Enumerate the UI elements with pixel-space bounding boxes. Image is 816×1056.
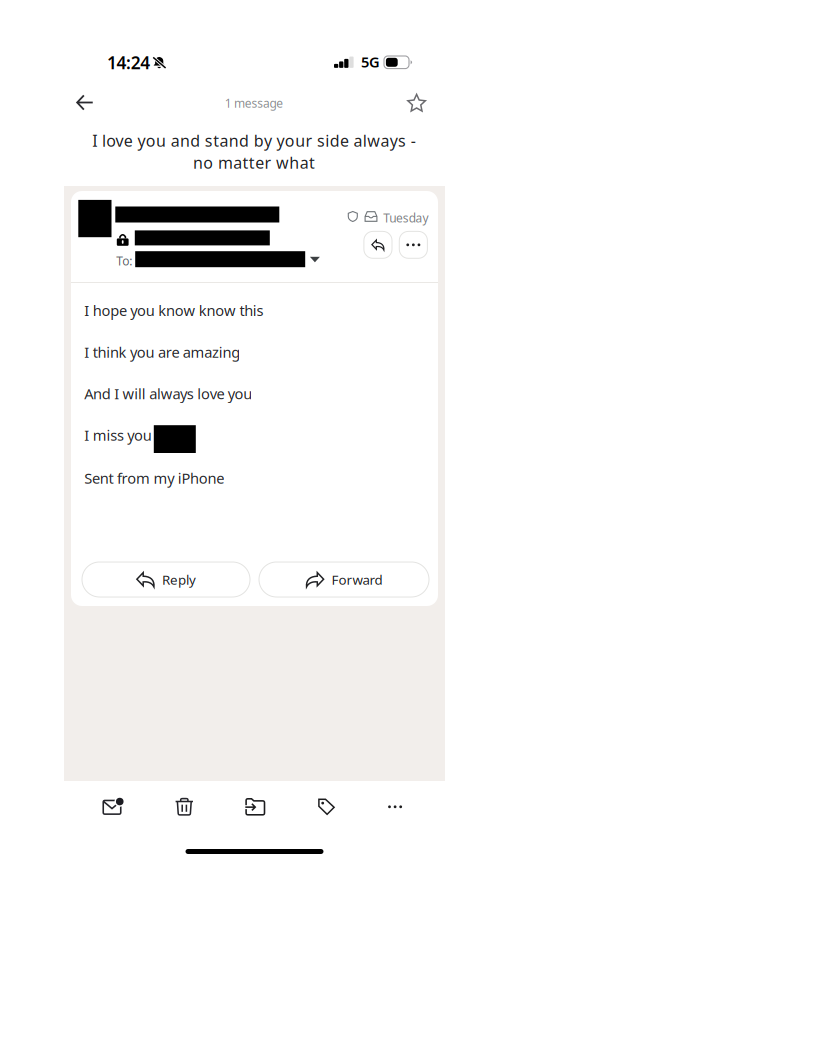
button[interactable]: Reply [364,231,392,258]
staticText: I miss you [84,425,152,445]
staticText: I love you and stand by your side always… [92,130,416,151]
button[interactable]: Back [63,82,107,122]
staticText: no matter what [193,152,315,173]
button[interactable]: Move to [233,785,277,829]
staticText: I hope you know know this [84,301,264,320]
staticText: I think you are amazing [84,342,240,362]
staticText: 1 message [225,95,283,111]
staticText: To: [116,253,132,269]
staticText: Forward [331,571,382,588]
button[interactable]: More options [399,231,427,258]
button[interactable]: Label [304,785,348,829]
staticText: Reply [162,571,196,588]
button[interactable]: Star [394,83,438,123]
button[interactable]: Forward [259,562,429,597]
button[interactable]: Mark as unread [92,785,136,829]
button[interactable]: Delete [162,785,206,829]
button[interactable]: Reply [82,562,250,597]
staticText: Sent from my iPhone [84,468,224,488]
button[interactable]: More [373,785,417,829]
staticText: 14:24 [107,51,150,74]
staticText: 5G [361,52,380,71]
staticText: And I will always love you [84,384,252,403]
staticText: Tuesday [383,210,428,226]
